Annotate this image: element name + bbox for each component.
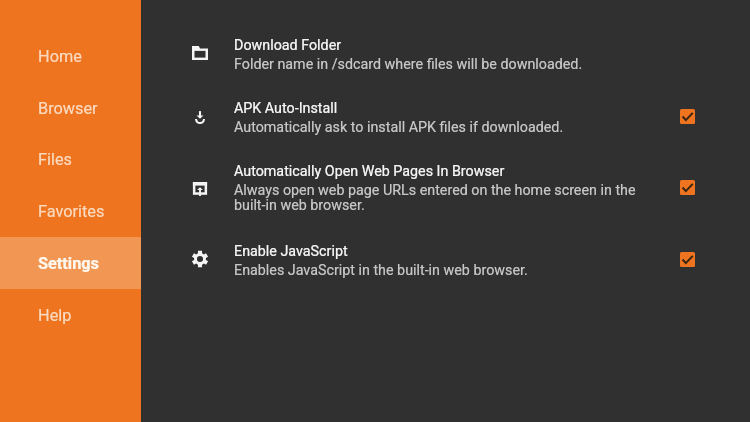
button[interactable]: Favorites (0, 185, 141, 237)
button[interactable]: Files (0, 133, 141, 185)
staticText: Folder name in /sdcard where files will … (234, 56, 583, 73)
staticText: Home (38, 47, 82, 66)
staticText: Enable JavaScript (234, 243, 348, 260)
button[interactable]: Automatically Open Web Pages In Browser (141, 153, 750, 213)
button[interactable]: Toggle APK Auto-Install (680, 109, 695, 124)
button[interactable]: Settings (0, 237, 141, 289)
button[interactable]: APK Auto-Install (141, 90, 750, 134)
button[interactable]: Enable JavaScript (141, 233, 750, 277)
staticText: Enables JavaScript in the built-in web b… (234, 262, 528, 279)
staticText: Favorites (38, 202, 105, 221)
staticText: APK Auto-Install (234, 100, 338, 117)
button[interactable]: Toggle Enable JavaScript (680, 252, 695, 267)
staticText: Download Folder (234, 37, 342, 54)
staticText: Files (38, 150, 72, 169)
button[interactable]: Home (0, 30, 141, 82)
staticText: Browser (38, 99, 98, 118)
button[interactable]: Download Folder (141, 27, 750, 71)
staticText: Settings (38, 254, 99, 273)
button[interactable]: Browser (0, 82, 141, 134)
staticText: Always open web page URLs entered on the… (234, 182, 638, 213)
button[interactable]: Toggle Automatically Open Web Pages In B… (680, 180, 695, 195)
staticText: Automatically Open Web Pages In Browser (234, 163, 505, 180)
button[interactable]: Help (0, 289, 141, 341)
staticText: Help (38, 306, 72, 325)
staticText: Automatically ask to install APK files i… (234, 119, 564, 136)
